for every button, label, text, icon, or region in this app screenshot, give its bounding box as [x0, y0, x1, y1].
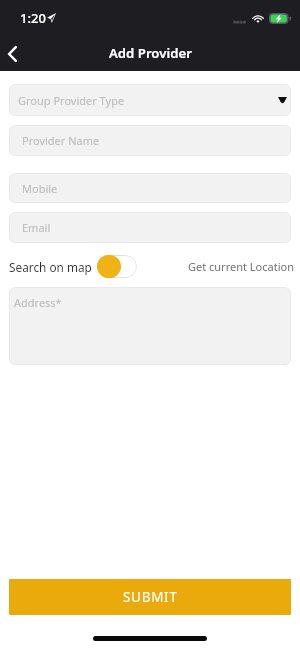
button[interactable]: Get current Location — [188, 259, 294, 274]
button[interactable]: Back — [0, 36, 25, 71]
staticText: Email — [22, 220, 51, 235]
staticText: Group Provider Type — [18, 93, 125, 108]
button[interactable]: Mobile — [9, 173, 291, 203]
button[interactable]: SUBMIT — [9, 579, 291, 615]
staticText: Search on map — [9, 259, 92, 275]
staticText: Address* — [14, 295, 62, 310]
button[interactable]: Search on map toggle — [97, 255, 137, 278]
staticText: Add Provider — [109, 44, 192, 62]
staticText: Mobile — [22, 181, 58, 196]
staticText: 1:20 — [20, 9, 46, 27]
button[interactable]: Provider Name — [9, 125, 291, 156]
button[interactable]: Group Provider Type — [9, 84, 291, 116]
staticText: SUBMIT — [123, 588, 178, 606]
button[interactable]: Address* — [9, 287, 291, 365]
staticText: Provider Name — [22, 133, 100, 148]
button[interactable]: Email — [9, 212, 291, 243]
